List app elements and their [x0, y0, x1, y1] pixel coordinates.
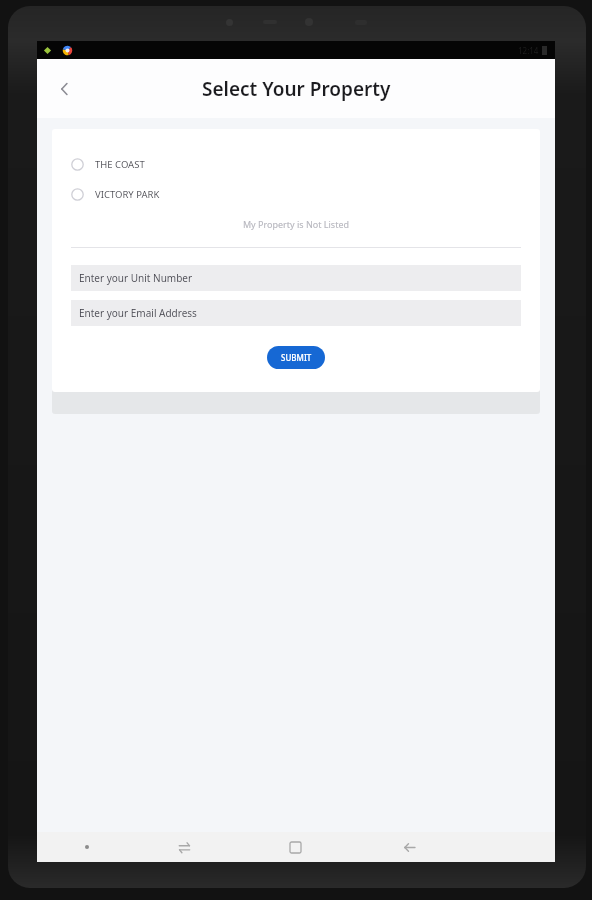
button[interactable]: My Property is Not Listed [71, 218, 521, 230]
staticText: THE COAST [95, 158, 145, 171]
button[interactable]: SUBMIT [267, 346, 325, 369]
staticText: Enter your Unit Number [79, 271, 193, 285]
button[interactable]: Enter your Unit Number [71, 265, 521, 291]
button[interactable]: Switch apps [149, 832, 219, 862]
button[interactable]: THE COAST [71, 158, 521, 171]
button[interactable]: Back [47, 71, 83, 107]
staticText: Enter your Email Address [79, 306, 197, 320]
button[interactable]: VICTORY PARK [71, 188, 521, 201]
button[interactable]: Recent apps [260, 832, 330, 862]
staticText: VICTORY PARK [95, 188, 160, 201]
staticText: 12:14 [518, 45, 539, 56]
staticText: SUBMIT [281, 352, 312, 363]
staticText: Select Your Property [202, 76, 391, 102]
button[interactable]: Enter your Email Address [71, 300, 521, 326]
button[interactable]: Back [374, 832, 444, 862]
button[interactable]: Assistant [37, 832, 137, 862]
